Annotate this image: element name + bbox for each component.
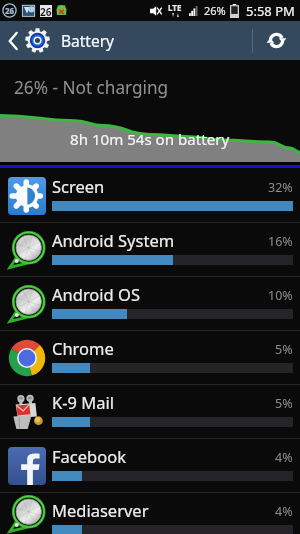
staticText: 5:58 PM xyxy=(246,2,295,20)
staticText: Chrome xyxy=(52,337,114,359)
button[interactable]: Chrome xyxy=(0,331,300,384)
staticText: Battery xyxy=(61,30,115,51)
button[interactable]: Android System xyxy=(0,223,300,276)
staticText: LTE xyxy=(168,2,182,13)
staticText: 16% xyxy=(268,233,293,250)
staticText: 10% xyxy=(268,287,293,304)
staticText: 5% xyxy=(275,341,293,358)
staticText: Screen xyxy=(52,175,105,197)
button[interactable]: Screen xyxy=(0,169,300,222)
staticText: 4% xyxy=(275,503,293,520)
staticText: Android OS xyxy=(52,283,140,305)
staticText: Mediaserver xyxy=(52,499,149,521)
button[interactable]: Facebook xyxy=(0,439,300,492)
staticText: Facebook xyxy=(52,445,126,467)
button[interactable]: Mediaserver xyxy=(0,493,300,534)
staticText: 26 xyxy=(40,5,52,17)
staticText: 26% - Not charging xyxy=(14,76,169,99)
staticText: 4% xyxy=(275,449,293,466)
staticText: 26 xyxy=(5,5,15,16)
button[interactable]: Refresh xyxy=(253,21,300,60)
button[interactable]: K-9 Mail xyxy=(0,385,300,438)
staticText: 26% xyxy=(204,3,226,18)
staticText: K-9 Mail xyxy=(52,391,114,413)
button[interactable]: Android OS xyxy=(0,277,300,330)
staticText: 32% xyxy=(268,179,293,196)
button[interactable]: Navigate up xyxy=(0,28,50,53)
staticText: 8h 10m 54s on battery xyxy=(70,129,230,150)
staticText: 5% xyxy=(275,395,293,412)
staticText: Android System xyxy=(52,229,175,251)
